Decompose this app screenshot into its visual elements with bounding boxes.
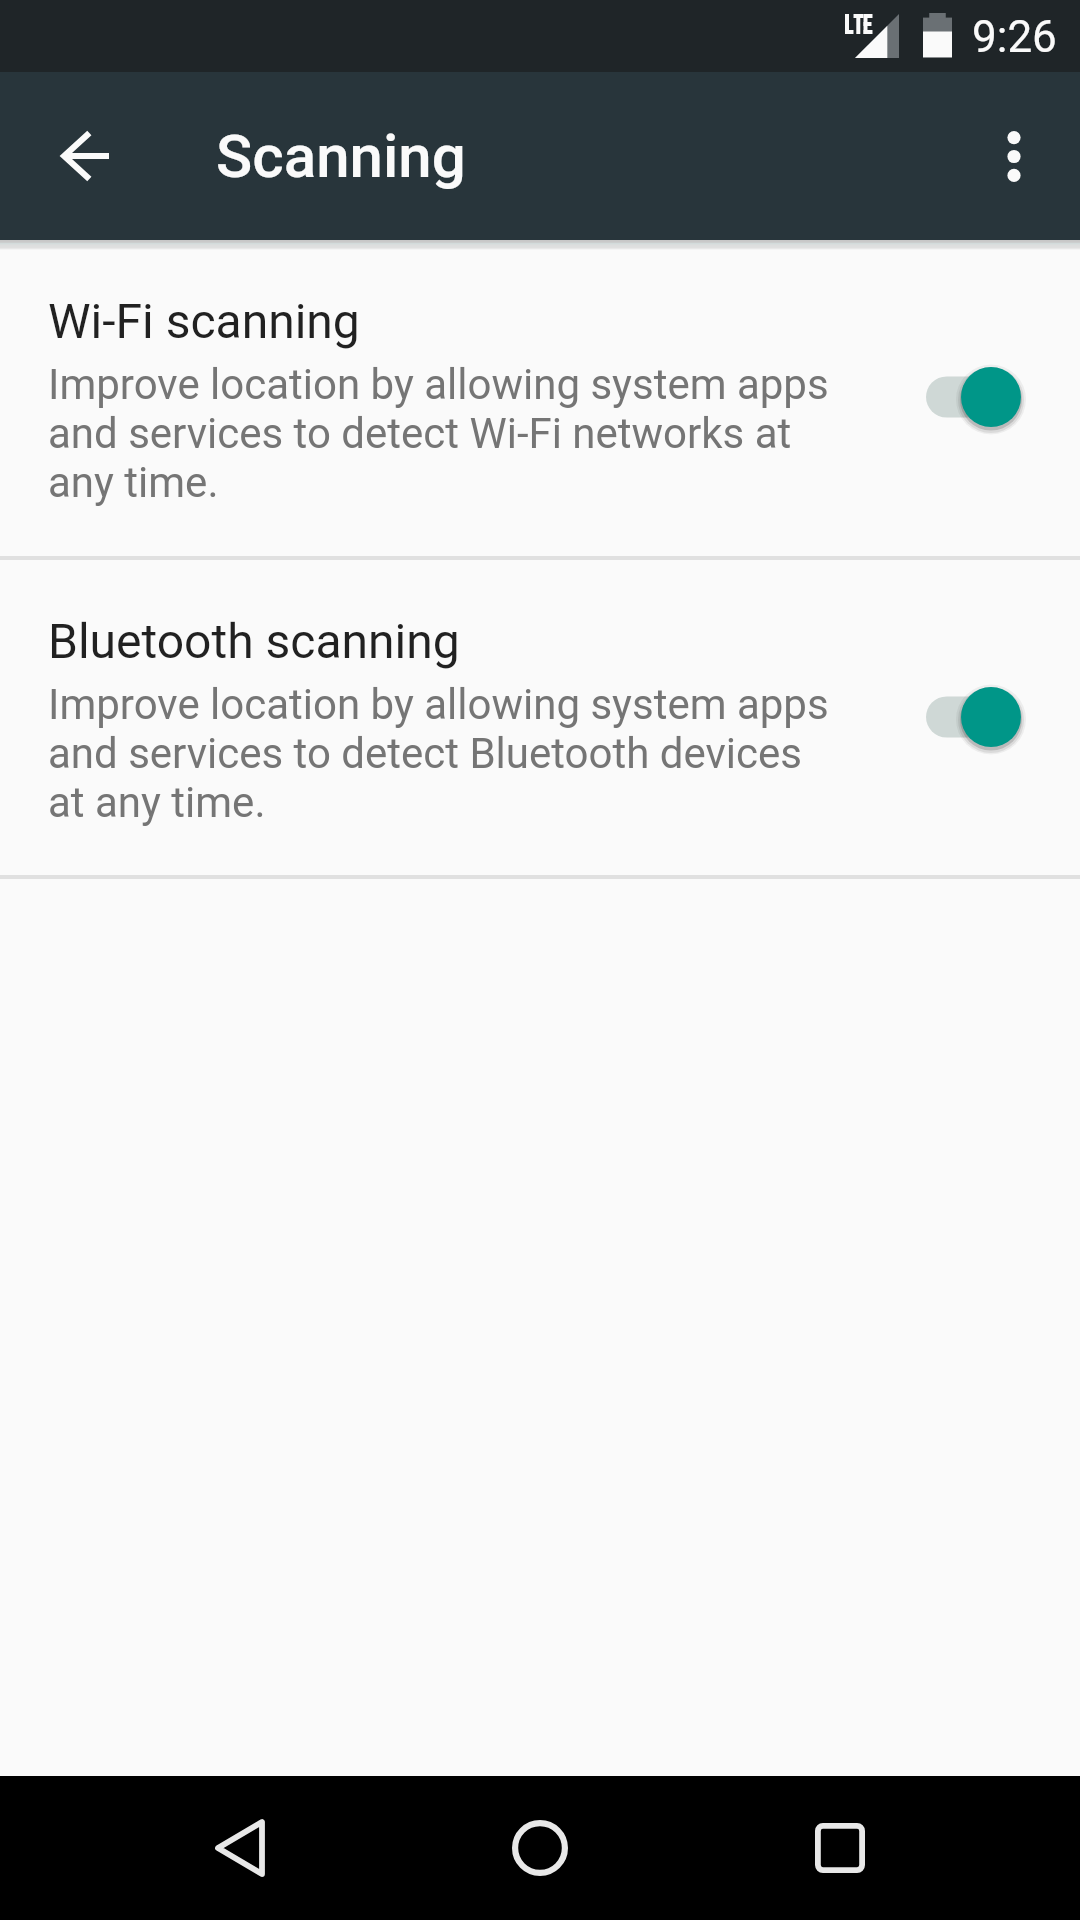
button[interactable]: Recent apps (780, 1788, 900, 1908)
staticText: Improve location by allowing system apps… (48, 680, 829, 827)
button[interactable]: Back (180, 1788, 300, 1908)
staticText: Bluetooth scanning (48, 613, 460, 669)
staticText: Improve location by allowing system apps… (48, 360, 829, 507)
button[interactable]: Wi-Fi scanning (0, 240, 1080, 556)
button[interactable]: Toggle (921, 342, 1061, 452)
staticText: Scanning (216, 121, 466, 191)
button[interactable]: Back (20, 90, 152, 222)
button[interactable]: Toggle (921, 662, 1061, 772)
button[interactable]: Home (480, 1788, 600, 1908)
button[interactable]: More options (960, 102, 1068, 210)
staticText: 9:26 (972, 11, 1057, 63)
staticText: Wi-Fi scanning (48, 293, 360, 349)
button[interactable]: Bluetooth scanning (0, 560, 1080, 875)
